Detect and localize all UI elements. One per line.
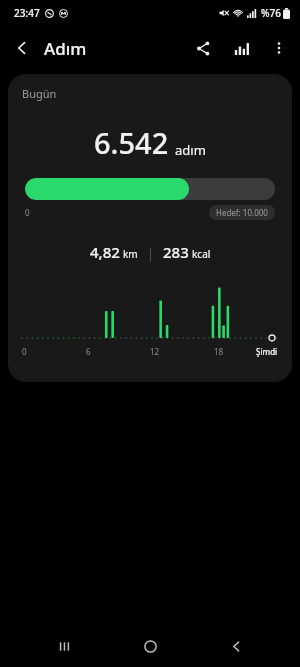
staticText: 6: [86, 346, 91, 357]
staticText: Bugün: [22, 86, 57, 101]
staticText: 4,82: [90, 242, 120, 262]
staticText: 0: [22, 346, 27, 357]
button[interactable]: Back: [0, 26, 44, 70]
staticText: adım: [175, 141, 206, 159]
staticText: 0: [25, 207, 30, 218]
staticText: 283: [163, 242, 189, 262]
staticText: Hedef: 10.000: [216, 207, 268, 218]
staticText: km: [123, 247, 138, 261]
staticText: Şimdi: [256, 346, 278, 357]
staticText: 12: [150, 346, 160, 357]
button[interactable]: Share: [184, 29, 222, 67]
staticText: Adım: [44, 37, 87, 60]
button[interactable]: Bugün: [8, 74, 292, 382]
staticText: 18: [214, 346, 224, 357]
button[interactable]: Recent apps: [42, 625, 86, 667]
staticText: 6.542: [94, 123, 169, 162]
button[interactable]: History chart: [222, 29, 260, 67]
button[interactable]: Hedef: 10.000: [209, 205, 275, 220]
button[interactable]: Home: [128, 625, 172, 667]
staticText: kcal: [192, 247, 211, 261]
button[interactable]: More options: [260, 29, 298, 67]
staticText: 23:47: [14, 6, 40, 20]
button[interactable]: Back: [214, 625, 258, 667]
staticText: %76: [261, 6, 281, 20]
